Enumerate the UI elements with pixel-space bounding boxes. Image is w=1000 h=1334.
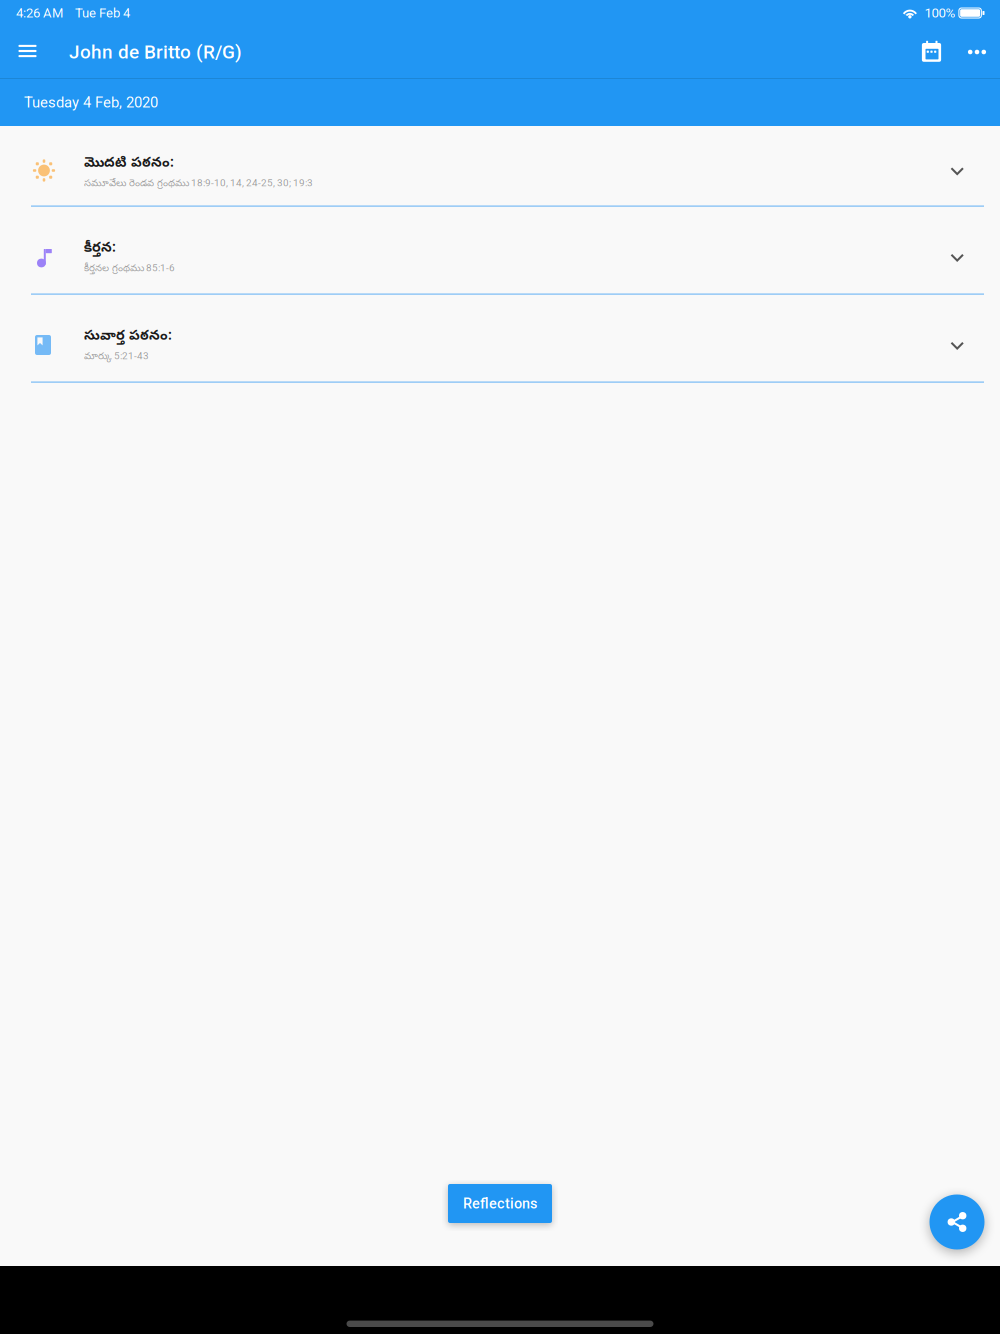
staticText: Reflections <box>463 1195 537 1212</box>
button[interactable]: సువార్త పఠనం: <box>0 295 1000 383</box>
button[interactable]: More options <box>954 26 1000 78</box>
button[interactable]: Reflections <box>448 1184 552 1223</box>
button[interactable]: మొదటి పఠనం: <box>0 126 1000 207</box>
button[interactable]: Share <box>929 1194 984 1249</box>
staticText: Tuesday 4 Feb, 2020 <box>24 94 158 111</box>
staticText: కీర్తన: <box>84 239 116 259</box>
staticText: మొదటి పఠనం: <box>84 154 174 174</box>
staticText: 100% <box>924 5 955 21</box>
staticText: John de Britto (R/G) <box>69 41 242 63</box>
staticText: కీర్తనల గ్రంథము 85:1-6 <box>84 262 175 276</box>
staticText: మార్కు 5:21-43 <box>84 350 149 364</box>
staticText: సువార్త పఠనం: <box>84 327 172 347</box>
button[interactable]: Calendar <box>904 26 954 78</box>
staticText: 4:26 AM <box>16 5 63 21</box>
staticText: సమూవేలు రెండవ గ్రంథము 18:9-10, 14, 24-25… <box>84 177 313 191</box>
button[interactable]: Open navigation menu <box>0 26 55 78</box>
button[interactable]: కీర్తన: <box>0 207 1000 295</box>
staticText: Tue Feb 4 <box>75 5 130 21</box>
